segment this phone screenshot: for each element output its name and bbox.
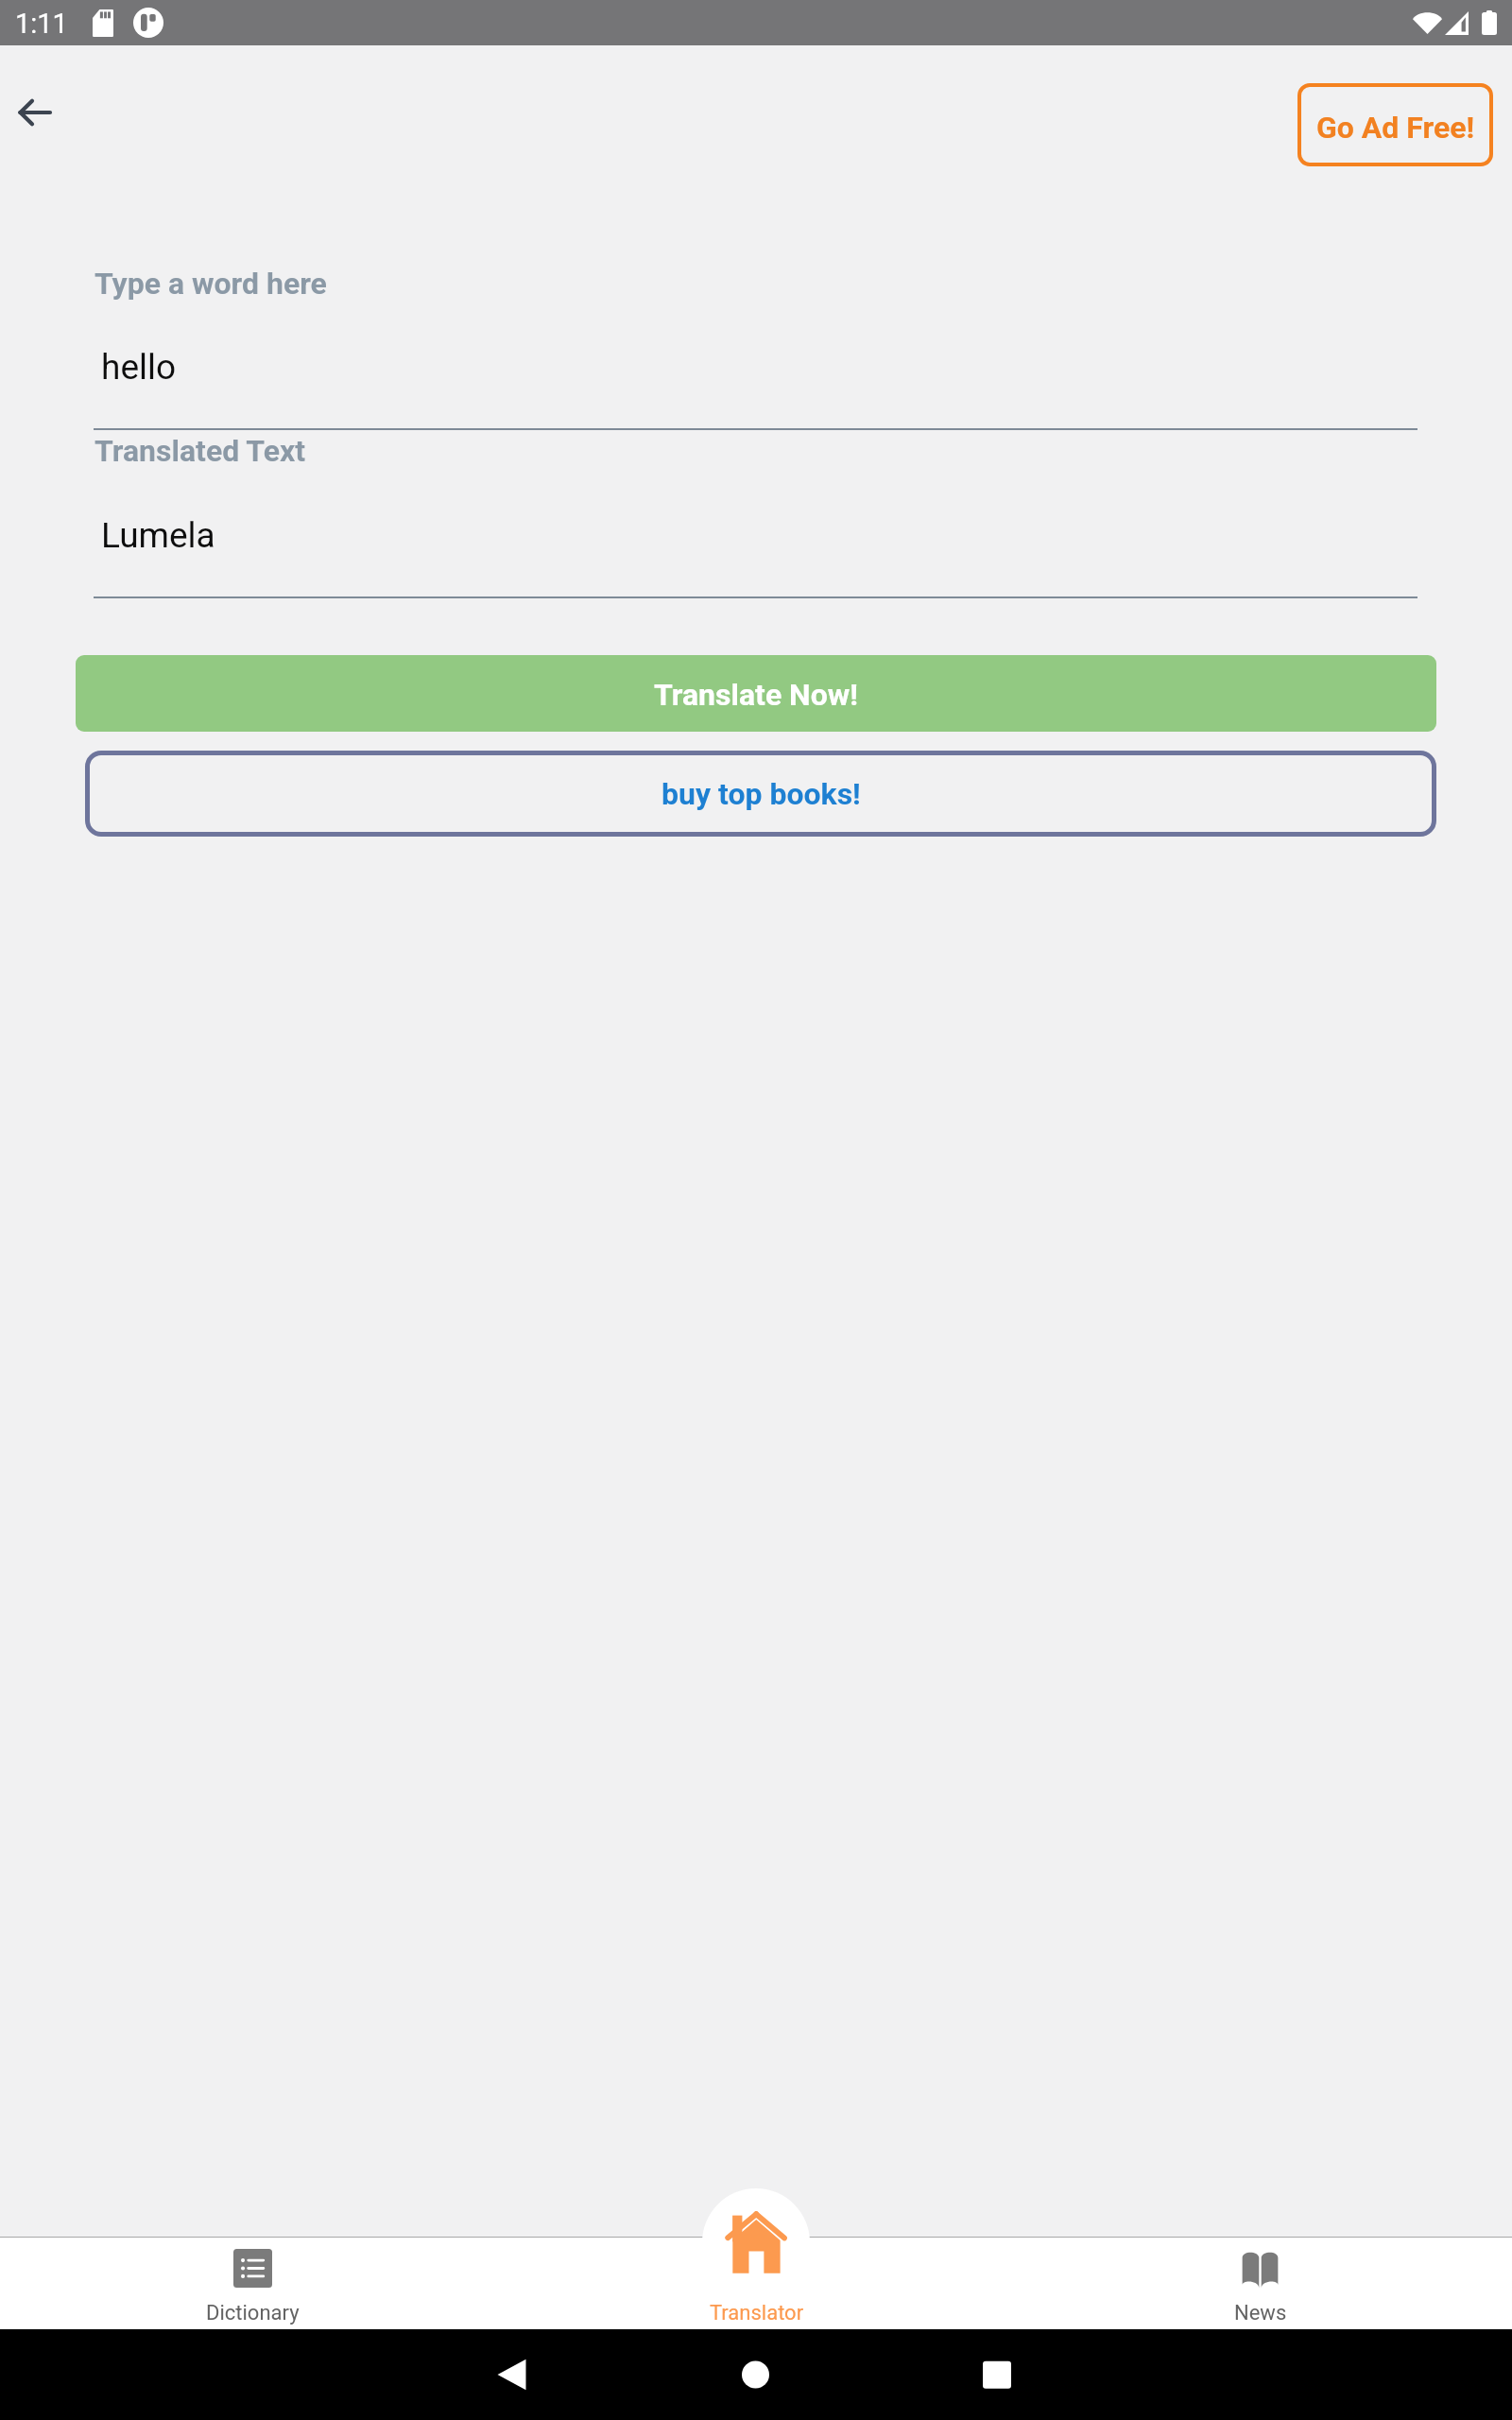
staticText: Dictionary [206, 2301, 300, 2325]
button[interactable]: Go Ad Free! [1297, 83, 1493, 166]
staticText: hello [101, 347, 177, 388]
button[interactable]: Translate Now! [76, 655, 1436, 732]
staticText: News [1234, 2301, 1287, 2325]
button[interactable]: News [1008, 2238, 1512, 2329]
staticText: Translator [710, 2301, 804, 2325]
button[interactable]: Dictionary [0, 2238, 505, 2329]
staticText: Lumela [101, 515, 215, 556]
staticText: Translate Now! [654, 677, 858, 713]
button[interactable]: buy top books! [85, 751, 1436, 837]
staticText: buy top books! [661, 776, 861, 812]
staticText: 1:11 [15, 8, 68, 40]
button[interactable]: Back [5, 82, 65, 143]
staticText: Go Ad Free! [1316, 110, 1475, 146]
staticText: Translated Text [94, 433, 306, 469]
button[interactable]: Translator [505, 2238, 1008, 2329]
staticText: Type a word here [94, 266, 327, 302]
